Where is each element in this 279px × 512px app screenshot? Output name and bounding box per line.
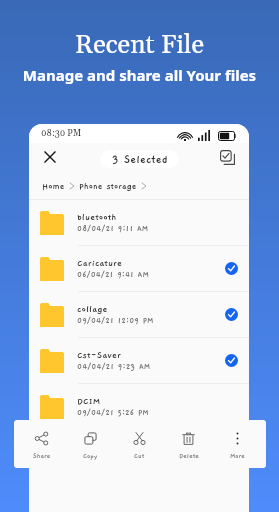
staticText: bluetooth [77, 212, 117, 223]
staticText: Recent File [0, 29, 279, 62]
staticText: 08:30 PM [41, 128, 82, 139]
staticText: 3 Selected [112, 153, 168, 166]
staticText: Share [33, 452, 51, 459]
staticText: Cut [134, 452, 145, 459]
staticText: Manage and share all Your files [0, 65, 279, 85]
button[interactable]: Cut [115, 420, 164, 468]
button[interactable]: Phone storage [79, 181, 137, 191]
staticText: 04/04/21 9:23 AM [77, 362, 151, 371]
staticText: More [230, 452, 245, 459]
button[interactable]: Caricature [29, 246, 249, 292]
staticText: 06/04/21 9:41 AM [77, 270, 149, 279]
button[interactable]: Close selection [37, 144, 63, 170]
staticText: Caricature [77, 258, 123, 269]
button[interactable]: Share [17, 420, 66, 468]
staticText: Delete [179, 452, 199, 459]
button[interactable]: DCIM [29, 384, 249, 430]
button[interactable]: Copy [66, 420, 115, 468]
staticText: DCIM [77, 396, 101, 407]
button[interactable]: 3 Selected [100, 150, 179, 168]
staticText: 09/04/21 12:09 PM [77, 316, 154, 325]
button[interactable]: Select all [215, 145, 239, 169]
staticText: 08/04/21 9:11 AM [77, 224, 149, 233]
staticText: Cst-Saver [77, 350, 122, 361]
staticText: 09/04/21 5:26 PM [77, 408, 149, 417]
button[interactable]: Delete [164, 420, 213, 468]
button[interactable]: Cst-Saver [29, 338, 249, 384]
button[interactable]: collage [29, 292, 249, 338]
staticText: Copy [83, 452, 98, 459]
button[interactable]: More [213, 420, 262, 468]
button[interactable]: Home [42, 181, 65, 191]
staticText: collage [77, 304, 108, 315]
button[interactable]: bluetooth [29, 200, 249, 246]
